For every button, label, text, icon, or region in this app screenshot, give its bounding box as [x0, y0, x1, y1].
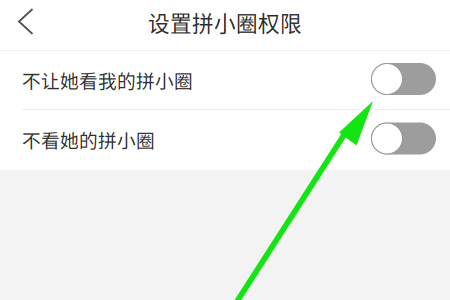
button[interactable]: 不让她看我的拼小圈 [0, 51, 450, 110]
staticText: 不让她看我的拼小圈 [22, 66, 193, 93]
staticText: 设置拼小圈权限 [148, 6, 302, 38]
button[interactable]: 不看她的拼小圈 [0, 110, 450, 170]
button[interactable]: Back [0, 0, 47, 51]
staticText: 不看她的拼小圈 [22, 126, 155, 153]
